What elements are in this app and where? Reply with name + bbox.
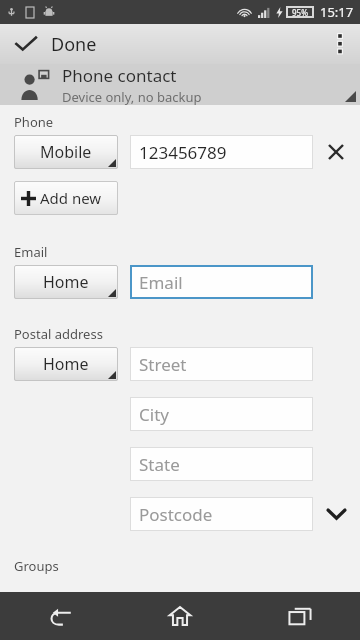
- staticText: 123456789: [139, 141, 227, 164]
- staticText: Home: [43, 353, 89, 375]
- staticText: Phone contact: [62, 64, 177, 87]
- staticText: Done: [51, 32, 97, 57]
- staticText: Street: [139, 353, 187, 376]
- staticText: Email: [139, 271, 183, 294]
- button[interactable]: Recent apps: [240, 592, 360, 640]
- staticText: Mobile: [40, 141, 92, 163]
- button[interactable]: Email: [130, 265, 313, 299]
- button[interactable]: Phone contact: [0, 64, 360, 105]
- button[interactable]: Street: [130, 347, 313, 381]
- staticText: Postcode: [139, 503, 213, 526]
- staticText: Home: [43, 271, 89, 293]
- button[interactable]: Home: [120, 592, 240, 640]
- button[interactable]: Home: [14, 265, 118, 299]
- staticText: Postal address: [14, 325, 103, 343]
- staticText: City: [139, 403, 169, 426]
- button[interactable]: 123456789: [130, 135, 313, 169]
- button[interactable]: Mobile: [14, 135, 118, 169]
- staticText: Phone: [14, 113, 54, 131]
- staticText: 95%: [292, 7, 308, 18]
- button[interactable]: Postcode: [130, 497, 313, 531]
- staticText: Groups: [14, 557, 59, 575]
- staticText: Email: [14, 243, 48, 261]
- button[interactable]: Expand address fields: [323, 501, 349, 527]
- staticText: State: [139, 453, 180, 476]
- button[interactable]: Back: [0, 592, 120, 640]
- button[interactable]: Done: [0, 24, 360, 64]
- button[interactable]: More options: [320, 24, 360, 64]
- button[interactable]: City: [130, 397, 313, 431]
- staticText: Device only, no backup: [62, 88, 202, 105]
- staticText: 15:17: [320, 3, 354, 21]
- button[interactable]: Remove phone number: [319, 135, 353, 169]
- staticText: Add new: [40, 188, 102, 208]
- button[interactable]: Add new: [14, 181, 118, 215]
- button[interactable]: Home: [14, 347, 118, 381]
- button[interactable]: State: [130, 447, 313, 481]
